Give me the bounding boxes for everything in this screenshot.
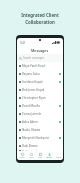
button[interactable]: Bob Jones Kayak	[17, 86, 63, 94]
staticText: David Micella	[22, 104, 40, 108]
button[interactable]: David Micella	[17, 102, 63, 110]
button[interactable]: Rayana Sabu	[17, 70, 63, 78]
staticText: Adira Abner	[22, 120, 39, 124]
button[interactable]: Rudi Brown	[17, 142, 63, 150]
staticText: Nadia Okawa	[22, 128, 41, 132]
staticText: Rayana Sabu	[22, 72, 40, 76]
button[interactable]: Christopher Ryan	[17, 94, 63, 102]
button[interactable]: Teams	[45, 153, 54, 159]
button[interactable]: Svetlana Kapali	[17, 78, 63, 86]
staticText: Svetlana Kapali	[22, 80, 43, 84]
button[interactable]: Maya Patel-Yusuf	[17, 62, 63, 70]
button[interactable]: Nadia Okawa	[17, 126, 63, 134]
staticText: Tomas Jarmile	[22, 112, 42, 116]
button[interactable]: More	[54, 153, 63, 159]
button[interactable]: Calls	[27, 153, 36, 159]
staticText: 9:41	[20, 41, 26, 45]
staticText: Christopher Ryan	[22, 96, 46, 100]
button[interactable]: Margreth Nordqvist	[17, 134, 63, 142]
button[interactable]: Chats	[17, 153, 27, 159]
staticText: Messages	[31, 48, 49, 53]
staticText: Margreth Nordqvist	[22, 136, 49, 140]
staticText: Calls	[29, 156, 34, 159]
button[interactable]: Katherine Lemos	[17, 150, 63, 151]
staticText: Katherine Lemos	[22, 150, 45, 151]
staticText: Search messages	[23, 56, 45, 60]
staticText: Files	[38, 156, 43, 159]
staticText: Chats	[19, 156, 25, 159]
button[interactable]: Search messages	[17, 54, 63, 62]
staticText: Integrated Client Collaboration	[21, 12, 59, 25]
staticText: More	[56, 156, 62, 159]
staticText: Maya Patel-Yusuf	[22, 64, 46, 68]
staticText: Teams	[46, 156, 53, 159]
button[interactable]: Adira Abner	[17, 118, 63, 126]
staticText: Bob Jones Kayak	[22, 88, 45, 92]
button[interactable]: Tomas Jarmile	[17, 110, 63, 118]
button[interactable]: Files	[36, 153, 45, 159]
staticText: Rudi Brown	[22, 144, 38, 148]
